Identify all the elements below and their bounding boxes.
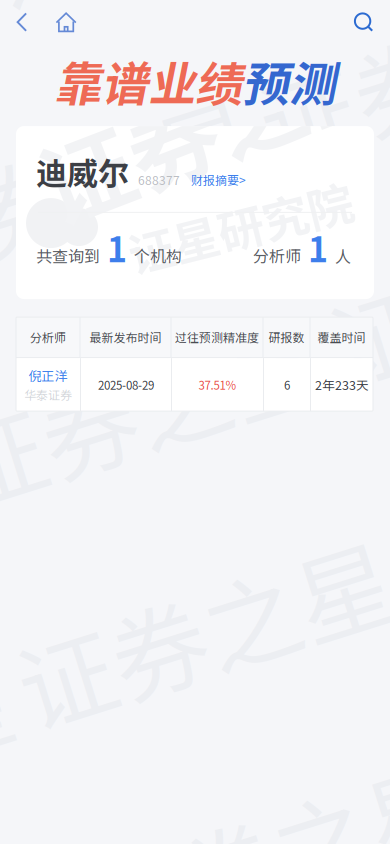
staticText: 2年233天 — [315, 376, 369, 394]
staticText: 个机构 — [134, 244, 182, 267]
staticText: 688377 — [138, 171, 180, 188]
staticText: 1 — [308, 223, 328, 272]
staticText: 预测 — [242, 47, 336, 115]
staticText: 证券之星 — [0, 339, 324, 479]
button[interactable]: Search — [342, 0, 386, 44]
button[interactable]: Home — [44, 0, 88, 44]
staticText: 证券之星 — [26, 54, 390, 187]
staticText: 证券之星 — [248, 0, 390, 137]
staticText: 人 — [335, 244, 351, 267]
staticText: 靠谱业绩 — [54, 47, 242, 115]
staticText: 37.51% — [198, 376, 236, 393]
staticText: 2025-08-29 — [98, 376, 154, 393]
staticText: 迪威尔 — [36, 149, 129, 194]
staticText: 华泰证券 — [24, 386, 72, 403]
staticText: 6 — [284, 376, 290, 393]
staticText: 研报数 — [268, 328, 304, 346]
staticText: 过往预测精准度 — [175, 328, 259, 346]
staticText: 证券之星 — [0, 117, 254, 257]
staticText: 证券之星 — [6, 560, 390, 700]
staticText: 分析师 — [253, 244, 301, 267]
staticText: 共查询到 — [36, 244, 100, 267]
staticText: 最新发布时间 — [89, 328, 161, 346]
button[interactable]: Back — [0, 0, 44, 44]
staticText: 覆盖时间 — [317, 328, 365, 346]
staticText: 倪正洋 — [28, 366, 67, 385]
staticText: 证券之星 — [0, 0, 185, 36]
staticText: 证星研究院 — [124, 192, 354, 259]
staticText: 证券之星 — [318, 218, 390, 358]
staticText: 分析师 — [30, 328, 66, 346]
staticText: 1 — [107, 223, 127, 272]
button[interactable]: 财报摘要> — [180, 171, 246, 188]
staticText: 财报摘要> — [191, 171, 246, 188]
